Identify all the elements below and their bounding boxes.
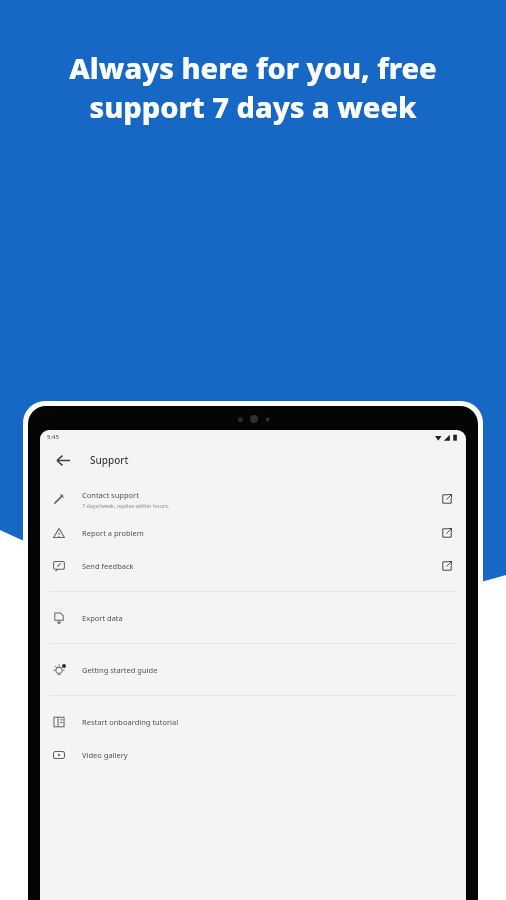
staticText: Getting started guide <box>82 665 158 675</box>
staticText: 7 days/week, replies within hours. <box>82 502 170 509</box>
button[interactable]: Video gallery <box>40 738 466 771</box>
staticText: Contact support <box>82 490 139 500</box>
button[interactable]: Open in new <box>440 526 454 540</box>
button[interactable]: Open in new <box>440 559 454 573</box>
button[interactable]: Export data <box>40 601 466 634</box>
button[interactable]: Back <box>52 449 74 471</box>
staticText: Report a problem <box>82 528 144 538</box>
button[interactable]: Open in new <box>440 492 454 506</box>
staticText: Restart onboarding tutorial <box>82 717 179 727</box>
button[interactable]: Report a problem <box>40 516 466 549</box>
staticText: Export data <box>82 613 123 623</box>
staticText: Always here for you, free support 7 days… <box>69 48 437 126</box>
button[interactable]: Send feedback <box>40 549 466 582</box>
staticText: Video gallery <box>82 750 128 760</box>
button[interactable]: Back <box>40 444 466 476</box>
staticText: Send feedback <box>82 561 134 571</box>
staticText: 5:45 <box>47 433 59 441</box>
button[interactable]: Contact support <box>40 482 466 516</box>
button[interactable]: Restart onboarding tutorial <box>40 705 466 738</box>
button[interactable]: Getting started guide <box>40 653 466 686</box>
staticText: Support <box>90 453 129 467</box>
